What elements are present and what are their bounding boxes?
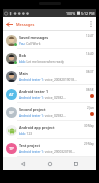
staticText: AT: [9, 92, 14, 98]
staticText: Saved messages: [19, 35, 49, 40]
button[interactable]: Bob: [3, 49, 96, 67]
staticText: You: Call Work: [19, 42, 41, 46]
button[interactable]: Main: [3, 67, 96, 85]
staticText: Android tester 1: voice_2900320190...: [19, 150, 75, 154]
button[interactable]: Saved messages: [3, 31, 96, 49]
staticText: Main: [19, 71, 28, 76]
staticText: 29 May: [84, 142, 94, 146]
button[interactable]: Back: [17, 158, 29, 170]
staticText: Android tester 1: voice_02982...: [19, 96, 66, 100]
staticText: Messages: [16, 22, 35, 27]
staticText: 08:37: [86, 70, 94, 74]
staticText: Android tester 1: voice_20082019018...: [19, 78, 77, 82]
button[interactable]: More options: [85, 17, 96, 31]
button[interactable]: TP: [3, 139, 96, 157]
staticText: Android app project: [19, 125, 55, 130]
staticText: Test project: [19, 143, 40, 148]
button[interactable]: SP: [3, 103, 96, 121]
staticText: 08:58: [86, 88, 94, 92]
staticText: SP: [9, 110, 14, 116]
button[interactable]: Recent apps: [70, 158, 82, 170]
staticText: 30 May: [84, 124, 94, 128]
staticText: Second project: [19, 107, 46, 112]
staticText: 2 Jun: [87, 106, 94, 110]
staticText: bbb: Let me know when ready: [19, 60, 64, 64]
staticText: 14:40: [86, 52, 94, 56]
button[interactable]: Back: [3, 17, 16, 31]
staticText: 5:12 PM: [81, 11, 95, 16]
button[interactable]: Home: [44, 158, 56, 170]
staticText: 100%: [66, 11, 76, 16]
button[interactable]: Android app project: [3, 121, 96, 139]
button[interactable]: AT: [3, 85, 96, 103]
staticText: Android tester 1: voice_02982...: [19, 114, 66, 118]
staticText: 12:47: [86, 34, 94, 38]
staticText: TP: [9, 146, 14, 152]
staticText: Android tester 1: [19, 89, 48, 94]
staticText: Bob: [19, 53, 26, 58]
staticText: bbb: 123: [19, 132, 33, 136]
